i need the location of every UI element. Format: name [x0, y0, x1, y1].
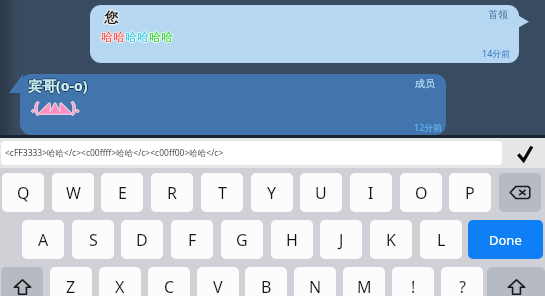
staticText: S: [89, 229, 98, 251]
staticText: !: [411, 276, 416, 296]
staticText: 您: [104, 8, 118, 26]
staticText: 哈哈: [101, 30, 125, 45]
staticText: H: [286, 229, 298, 251]
button[interactable]: K: [370, 220, 412, 259]
button[interactable]: N: [294, 267, 336, 296]
button[interactable]: L: [420, 220, 462, 259]
staticText: C: [164, 276, 175, 296]
staticText: 哈哈: [101, 28, 125, 43]
button[interactable]: D: [121, 220, 163, 259]
staticText: 哈哈: [150, 29, 174, 44]
button[interactable]: R: [151, 173, 193, 212]
staticText: R: [167, 182, 177, 204]
staticText: J: [339, 229, 344, 251]
button[interactable]: J: [320, 220, 362, 259]
staticText: Done: [489, 231, 522, 249]
staticText: M: [357, 276, 372, 296]
staticText: 哈哈: [100, 29, 124, 44]
staticText: I: [368, 182, 374, 204]
button[interactable]: G: [221, 220, 263, 259]
staticText: .(◢▲◣).: [31, 98, 80, 117]
staticText: P: [465, 182, 475, 204]
staticText: U: [315, 182, 327, 204]
button[interactable]: E: [101, 173, 143, 212]
staticText: 哈哈: [125, 29, 149, 44]
button[interactable]: F: [171, 220, 213, 259]
staticText: Z: [66, 276, 76, 296]
staticText: 首领: [488, 8, 508, 21]
staticText: Q: [17, 182, 30, 204]
button[interactable]: Y: [251, 173, 293, 212]
button[interactable]: Z: [50, 267, 92, 296]
button[interactable]: W: [52, 173, 94, 212]
button[interactable]: B: [245, 267, 287, 296]
staticText: 您: [104, 10, 118, 28]
staticText: W: [66, 182, 81, 204]
staticText: 哈哈: [126, 29, 150, 44]
staticText: .(◢▲◣).: [32, 97, 81, 116]
staticText: 哈哈: [102, 29, 126, 44]
staticText: A: [38, 229, 49, 251]
button[interactable]: U: [300, 173, 342, 212]
staticText: 宾哥(o-o): [28, 77, 88, 96]
staticText: 哈哈: [148, 29, 172, 44]
button[interactable]: H: [271, 220, 313, 259]
staticText: K: [386, 229, 396, 251]
staticText: 哈哈: [149, 28, 173, 43]
staticText: 宾哥(o-o): [28, 76, 88, 95]
button[interactable]: X: [99, 267, 141, 296]
staticText: 哈哈: [101, 29, 125, 44]
staticText: <cFF3333>哈哈</c><c00ffff>哈哈</c><c00ff00>哈…: [5, 147, 224, 159]
button[interactable]: Shift: [487, 267, 545, 296]
button[interactable]: 宾哥(o-o): [20, 74, 446, 135]
button[interactable]: M: [343, 267, 385, 296]
button[interactable]: P: [449, 173, 491, 212]
staticText: 宾哥(o-o): [27, 76, 87, 95]
staticText: E: [118, 182, 127, 204]
staticText: F: [188, 229, 197, 251]
button[interactable]: S: [72, 220, 114, 259]
button[interactable]: T: [201, 173, 243, 212]
staticText: 14分前: [482, 47, 511, 59]
staticText: 哈哈: [149, 29, 173, 44]
staticText: 您: [104, 9, 118, 27]
staticText: 您: [103, 9, 117, 27]
staticText: 成员: [415, 77, 435, 90]
button[interactable]: <cFF3333>哈哈</c><c00ffff>哈哈</c><c00ff00>哈…: [1, 141, 502, 165]
staticText: 12分前: [414, 121, 443, 133]
staticText: O: [415, 182, 428, 204]
staticText: B: [261, 276, 272, 296]
staticText: 宾哥(o-o): [29, 76, 89, 95]
button[interactable]: Q: [2, 173, 44, 212]
staticText: L: [437, 229, 446, 251]
staticText: 哈哈: [125, 30, 149, 45]
staticText: V: [213, 276, 223, 296]
staticText: Y: [267, 182, 277, 204]
button[interactable]: A: [22, 220, 64, 259]
staticText: .(◢▲◣).: [31, 97, 80, 116]
staticText: ?: [459, 276, 466, 296]
staticText: 哈哈: [124, 29, 148, 44]
button[interactable]: Shift: [1, 267, 43, 296]
button[interactable]: ?: [441, 267, 483, 296]
staticText: .(◢▲◣).: [30, 97, 79, 116]
button[interactable]: I: [350, 173, 392, 212]
staticText: D: [136, 229, 148, 251]
button[interactable]: !: [392, 267, 434, 296]
staticText: 宾哥(o-o): [28, 75, 88, 94]
staticText: G: [236, 229, 248, 251]
staticText: N: [309, 276, 322, 296]
button[interactable]: Confirm: [505, 138, 545, 168]
staticText: 哈哈: [149, 30, 173, 45]
staticText: .(◢▲◣).: [31, 96, 80, 115]
staticText: X: [115, 276, 125, 296]
staticText: 哈哈: [125, 28, 149, 43]
button[interactable]: Done: [468, 220, 543, 259]
button[interactable]: O: [400, 173, 442, 212]
button[interactable]: C: [148, 267, 190, 296]
button[interactable]: V: [197, 267, 239, 296]
button[interactable]: 您: [90, 5, 519, 63]
button[interactable]: Backspace: [499, 173, 541, 212]
staticText: 您: [105, 9, 119, 27]
staticText: T: [218, 182, 227, 204]
